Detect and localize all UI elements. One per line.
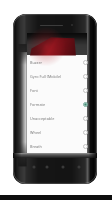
staticText: Formate [30, 102, 79, 107]
button[interactable]: Search [58, 162, 67, 171]
staticText: Unacceptable [30, 116, 79, 121]
button[interactable]: Menu [42, 162, 51, 171]
button[interactable]: Wheel [27, 125, 87, 139]
button[interactable]: Home [74, 162, 83, 171]
staticText: Font [30, 88, 79, 93]
button[interactable]: Buzzer [27, 55, 87, 69]
staticText: Gyro Full (Mobile) [30, 74, 79, 79]
staticText: Buzzer [30, 60, 79, 65]
staticText: Wheel [30, 130, 79, 135]
button[interactable]: Back [29, 162, 38, 171]
button[interactable]: Font [27, 83, 87, 97]
button[interactable]: Formate [27, 97, 87, 111]
button[interactable]: Gyro Full (Mobile) [27, 69, 87, 83]
button[interactable]: Breath [27, 139, 87, 153]
button[interactable]: Unacceptable [27, 111, 87, 125]
staticText: Breath [30, 144, 79, 149]
